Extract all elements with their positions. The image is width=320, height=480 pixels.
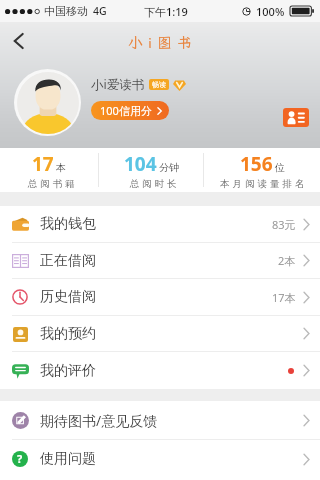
staticText: 位: [275, 161, 285, 174]
staticText: 总阅书籍: [26, 178, 76, 190]
staticText: 分钟: [159, 161, 179, 174]
staticText: 104: [124, 151, 157, 177]
button[interactable]: 100信用分: [91, 101, 169, 120]
staticText: 本月阅读量排名: [220, 178, 308, 190]
button[interactable]: 156: [204, 151, 320, 190]
staticText: 小i爱读书: [91, 76, 145, 93]
button[interactable]: 历史借阅: [0, 279, 320, 315]
staticText: 2本: [278, 253, 296, 268]
button[interactable]: 期待图书/意见反馈: [0, 401, 320, 439]
staticText: 17本: [272, 290, 296, 305]
button[interactable]: 我的评价: [0, 352, 320, 389]
staticText: 中国移动: [44, 4, 88, 18]
staticText: 我的预约: [40, 325, 96, 343]
button[interactable]: Reader card: [283, 107, 309, 127]
staticText: 畅读: [152, 80, 166, 89]
staticText: 期待图书/意见反馈: [40, 411, 158, 430]
staticText: 历史借阅: [40, 288, 96, 306]
staticText: 我的钱包: [40, 215, 96, 233]
button[interactable]: Back: [4, 27, 32, 55]
staticText: 下午1:19: [144, 4, 188, 19]
button[interactable]: 17: [0, 151, 98, 190]
staticText: 100信用分: [100, 103, 152, 118]
staticText: 17: [32, 151, 54, 177]
button[interactable]: 104: [99, 151, 203, 190]
staticText: 83元: [272, 217, 296, 232]
staticText: 本: [56, 161, 66, 174]
staticText: 总阅时长: [128, 178, 178, 190]
button[interactable]: 我的预约: [0, 316, 320, 351]
staticText: 使用问题: [40, 450, 96, 468]
staticText: ?: [17, 451, 23, 466]
button[interactable]: ?: [0, 440, 320, 478]
staticText: 我的评价: [40, 362, 96, 380]
button[interactable]: 我的钱包: [0, 206, 320, 242]
staticText: 4G: [93, 4, 107, 18]
staticText: 100%: [256, 4, 285, 19]
staticText: 156: [240, 151, 273, 177]
staticText: 正在借阅: [40, 252, 96, 270]
button[interactable]: 正在借阅: [0, 243, 320, 278]
staticText: 小i图书: [128, 33, 197, 53]
